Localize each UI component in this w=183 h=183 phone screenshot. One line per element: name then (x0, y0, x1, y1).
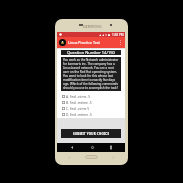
staticText: D. find -mtime -5 (66, 112, 92, 116)
button[interactable]: Linux Practice Test (57, 37, 125, 48)
staticText: 1:38 PM (112, 33, 124, 37)
button[interactable]: B. find -mtime -5 (61, 99, 121, 105)
staticText: B. find -mtime -5 (66, 100, 92, 104)
button[interactable]: More options (117, 39, 124, 46)
staticText: C. find -ctime 5 (66, 106, 90, 110)
staticText: SAMSUNG (83, 25, 102, 29)
staticText: Question Number 14/150 (67, 50, 115, 55)
button[interactable]: A. find -ctime -5 (61, 93, 121, 99)
staticText: SUBMIT YOUR CHOICE (73, 132, 110, 136)
button[interactable]: Back (66, 143, 78, 152)
button[interactable]: SUBMIT YOUR CHOICE (61, 129, 121, 138)
button[interactable]: Home (86, 143, 98, 152)
button[interactable]: C. find -ctime 5 (61, 105, 121, 111)
staticText: You work as the Network administrator fo… (63, 58, 119, 90)
staticText: Linux Practice Test (68, 40, 100, 45)
button[interactable]: D. find -mtime -5 (61, 111, 121, 117)
staticText: A. find -ctime -5 (66, 94, 91, 98)
button[interactable]: Recent apps (105, 143, 117, 152)
